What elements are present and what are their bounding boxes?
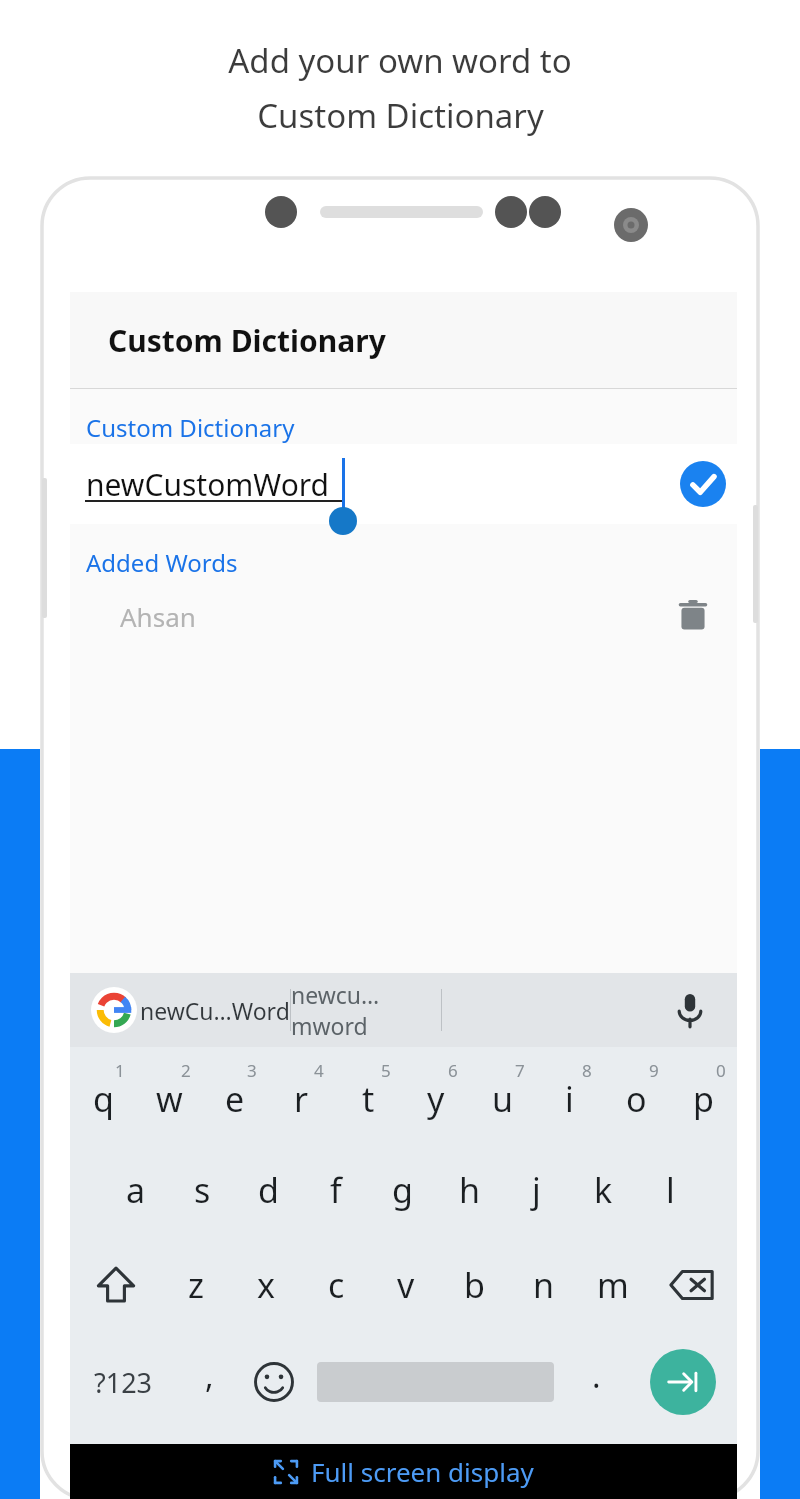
staticText: n [533,1262,555,1308]
staticText: x [257,1262,275,1308]
staticText: newcu…mword [291,979,441,1041]
button[interactable]: Delete word [667,590,719,642]
button[interactable]: k [570,1142,637,1237]
staticText: e [225,1076,245,1122]
staticText: ?123 [94,1364,153,1401]
button[interactable]: y [402,1047,469,1142]
staticText: p [693,1076,714,1122]
button[interactable]: Add word [677,458,729,510]
staticText: newCustomWord [86,464,330,505]
staticText: Custom Dictionary [86,411,295,444]
staticText: m [597,1262,629,1308]
staticText: , [205,1354,214,1398]
button[interactable]: p [670,1047,737,1142]
staticText: 7 [515,1059,525,1082]
staticText: Full screen display [311,1454,534,1489]
staticText: Added Words [86,546,238,579]
button[interactable]: Space [306,1332,564,1432]
staticText: 9 [649,1059,659,1082]
staticText: k [594,1167,613,1213]
button[interactable]: c [301,1237,371,1332]
button[interactable]: b [440,1237,509,1332]
button[interactable]: t [335,1047,402,1142]
button[interactable]: e [202,1047,268,1142]
staticText: 4 [314,1059,324,1082]
button[interactable]: d [235,1142,302,1237]
button[interactable]: Custom Dictionary [70,292,737,388]
button[interactable]: Voice input [665,985,715,1035]
staticText: u [492,1076,514,1122]
button[interactable]: Ahsan [70,579,737,653]
button[interactable]: Full screen display [70,1444,737,1499]
button[interactable]: m [578,1237,647,1332]
staticText: 5 [381,1059,391,1082]
button[interactable]: Backspace [647,1237,737,1332]
button[interactable]: l [637,1142,704,1237]
staticText: a [126,1167,146,1213]
button[interactable]: f [302,1142,369,1237]
staticText: w [156,1076,183,1122]
button[interactable]: newCu…Word [140,973,290,1047]
button[interactable]: o [603,1047,670,1142]
button[interactable]: , [177,1332,241,1432]
staticText: b [464,1262,485,1308]
staticText: v [397,1262,415,1308]
staticText: y [427,1076,445,1122]
button[interactable]: ?123 [70,1332,177,1432]
button[interactable]: r [268,1047,335,1142]
staticText: s [194,1167,211,1213]
staticText: l [666,1167,675,1213]
staticText: Custom Dictionary [257,93,544,138]
button[interactable]: h [436,1142,503,1237]
staticText: 0 [716,1059,726,1082]
button[interactable]: x [231,1237,301,1332]
staticText: z [188,1262,204,1308]
button[interactable]: newCustomWord [70,444,737,524]
button[interactable]: Emoji [241,1332,306,1432]
staticText: o [626,1076,647,1122]
button[interactable]: q [70,1047,136,1142]
staticText: i [565,1076,574,1122]
button[interactable]: v [371,1237,440,1332]
staticText: 8 [582,1059,592,1082]
staticText: f [330,1167,342,1213]
staticText: Custom Dictionary [108,320,386,361]
button[interactable]: j [503,1142,570,1237]
staticText: Add your own word to [228,38,572,83]
staticText: j [532,1167,541,1213]
button[interactable]: Google [88,984,140,1036]
staticText: h [459,1167,481,1213]
staticText: newCu…Word [140,995,290,1026]
button[interactable]: g [369,1142,436,1237]
staticText: t [362,1076,375,1122]
staticText: 3 [247,1059,257,1082]
button[interactable]: newcu…mword [291,973,441,1047]
staticText: . [592,1354,601,1398]
button[interactable]: i [536,1047,603,1142]
button[interactable]: u [469,1047,536,1142]
staticText: c [328,1262,345,1308]
staticText: 6 [448,1059,458,1082]
button[interactable]: Next field [629,1332,737,1432]
staticText: 1 [115,1059,125,1082]
button[interactable]: w [136,1047,202,1142]
staticText: 2 [181,1059,191,1082]
staticText: g [392,1167,413,1213]
button[interactable]: Shift [70,1237,161,1332]
button[interactable]: n [509,1237,578,1332]
staticText: Ahsan [120,599,196,634]
button[interactable]: a [103,1142,169,1237]
staticText: q [93,1076,114,1122]
staticText: d [258,1167,279,1213]
button[interactable]: z [161,1237,231,1332]
button[interactable]: s [169,1142,235,1237]
staticText: r [294,1076,309,1122]
button[interactable]: . [564,1332,629,1432]
